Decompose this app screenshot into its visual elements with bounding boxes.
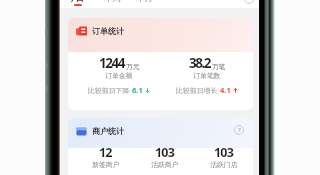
staticText: 活跃门店: [210, 160, 238, 169]
staticText: 活跃商户: [151, 160, 179, 169]
button[interactable]: 本月: [132, 0, 156, 5]
staticText: 12: [99, 144, 112, 161]
staticText: 本月: [136, 0, 153, 4]
button[interactable]: 38.2: [163, 54, 251, 95]
button[interactable]: 103: [135, 144, 194, 170]
staticText: 比较前日增长: [176, 86, 218, 95]
staticText: 103: [214, 144, 234, 161]
staticText: 4.1: [220, 85, 231, 95]
staticText: 万笔: [212, 62, 226, 71]
button[interactable]: 1244: [75, 54, 163, 95]
staticText: 本周: [104, 0, 121, 4]
button[interactable]: 12: [76, 144, 135, 170]
staticText: 1244: [99, 54, 124, 72]
button[interactable]: Date picker: [244, 0, 254, 4]
staticText: ?: [238, 126, 241, 134]
staticText: 商户统计: [92, 126, 124, 136]
button[interactable]: 本周: [100, 0, 124, 5]
staticText: 订单金额: [105, 71, 133, 80]
staticText: 38.2: [189, 54, 210, 72]
staticText: 103: [155, 144, 175, 161]
staticText: 万元: [126, 62, 140, 71]
button[interactable]: 103: [194, 144, 253, 170]
staticText: 今日: [67, 0, 84, 4]
staticText: 6.1: [132, 85, 143, 95]
button[interactable]: 今日: [63, 0, 87, 5]
staticText: 订单统计: [92, 26, 124, 36]
staticText: 新签商户: [92, 160, 120, 169]
staticText: 订单笔数: [193, 71, 221, 80]
staticText: 比较前日下降: [88, 86, 130, 95]
button[interactable]: Help: [234, 125, 244, 135]
